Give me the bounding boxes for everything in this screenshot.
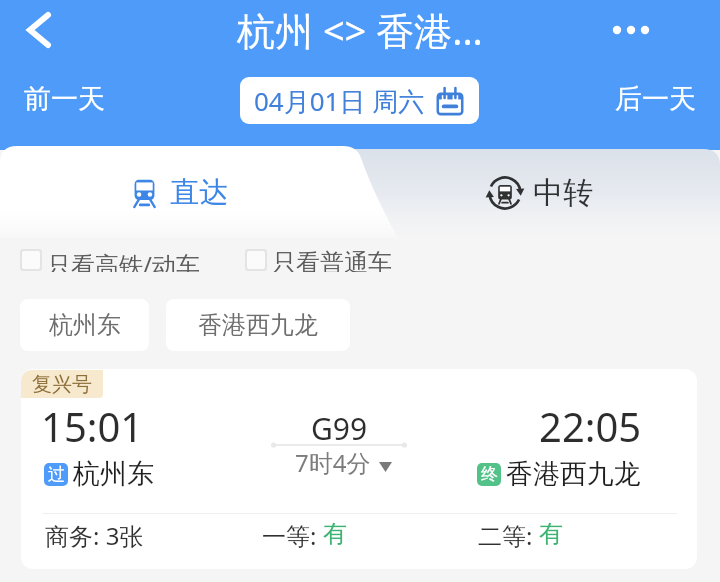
staticText: 香港西九龙 bbox=[198, 310, 318, 340]
staticText: 终 bbox=[481, 464, 498, 485]
staticText: 香港西九龙 bbox=[506, 457, 641, 491]
button[interactable]: 杭州东 bbox=[20, 299, 149, 351]
staticText: 直达 bbox=[170, 174, 228, 211]
staticText: 杭州东 bbox=[49, 310, 121, 340]
button[interactable]: 04月01日 周六 bbox=[240, 77, 479, 124]
staticText: G99 bbox=[311, 408, 368, 449]
button[interactable]: 后一天 bbox=[605, 76, 706, 122]
staticText: 15:01 bbox=[41, 399, 144, 453]
staticText: 有 bbox=[323, 519, 347, 549]
button[interactable]: 香港西九龙 bbox=[166, 299, 350, 351]
staticText: 04月01日 周六 bbox=[254, 83, 425, 119]
staticText: 杭州东 bbox=[73, 457, 154, 491]
staticText: 复兴号 bbox=[32, 372, 92, 397]
staticText: 前一天 bbox=[24, 82, 105, 116]
staticText: 22:05 bbox=[539, 399, 642, 453]
staticText: 商务: 3张 bbox=[45, 519, 144, 552]
button[interactable]: 只看高铁/动车 bbox=[14, 244, 206, 276]
staticText: 有 bbox=[539, 519, 563, 549]
staticText: 一等: bbox=[262, 519, 323, 552]
button[interactable]: 中转 bbox=[487, 147, 593, 239]
staticText: 7时4分 bbox=[295, 446, 371, 479]
button[interactable]: Back bbox=[10, 1, 67, 58]
staticText: 只看高铁/动车 bbox=[47, 248, 200, 272]
button[interactable]: 前一天 bbox=[14, 76, 115, 122]
button[interactable]: 只看普通车 bbox=[239, 244, 398, 276]
staticText: 过 bbox=[48, 464, 65, 485]
staticText: 二等: bbox=[478, 519, 539, 552]
staticText: 只看普通车 bbox=[272, 248, 392, 272]
staticText: 杭州 <> 香港... bbox=[237, 4, 483, 56]
button[interactable]: 复兴号 bbox=[21, 369, 697, 569]
button[interactable]: More options bbox=[603, 2, 659, 58]
staticText: 后一天 bbox=[615, 82, 696, 116]
button[interactable]: 直达 bbox=[129, 146, 228, 238]
staticText: 中转 bbox=[533, 174, 593, 212]
